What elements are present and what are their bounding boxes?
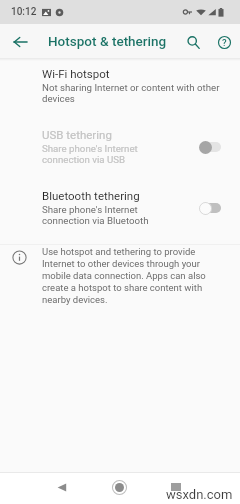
button[interactable]: Help bbox=[209, 27, 239, 57]
staticText: Share phone's Internet connection via Bl… bbox=[42, 204, 169, 226]
button[interactable]: Navigate up bbox=[3, 25, 37, 59]
button[interactable]: Bluetooth tethering bbox=[0, 183, 240, 244]
button[interactable]: Search bbox=[178, 27, 208, 57]
button[interactable]: Recent apps bbox=[163, 474, 189, 500]
staticText: Bluetooth tethering bbox=[42, 189, 140, 202]
button[interactable]: Wi-Fi hotspot bbox=[0, 61, 240, 122]
staticText: Not sharing Internet or content with oth… bbox=[42, 82, 221, 104]
staticText: ? bbox=[222, 37, 227, 48]
button[interactable]: Back bbox=[49, 474, 75, 500]
button[interactable]: Home bbox=[106, 474, 132, 500]
staticText: Wi-Fi hotspot bbox=[42, 67, 110, 80]
staticText: USB tethering bbox=[42, 128, 112, 141]
staticText: Use hotspot and tethering to provide Int… bbox=[42, 246, 220, 305]
button[interactable]: Toggle bbox=[199, 139, 221, 155]
staticText: Hotspot & tethering bbox=[48, 33, 167, 49]
button[interactable]: Toggle bbox=[199, 200, 221, 216]
staticText: 10:12 bbox=[11, 6, 37, 18]
button[interactable]: USB tethering bbox=[0, 122, 240, 183]
staticText: Share phone's Internet connection via US… bbox=[42, 143, 169, 165]
staticText: wsxdn.com bbox=[166, 487, 233, 502]
